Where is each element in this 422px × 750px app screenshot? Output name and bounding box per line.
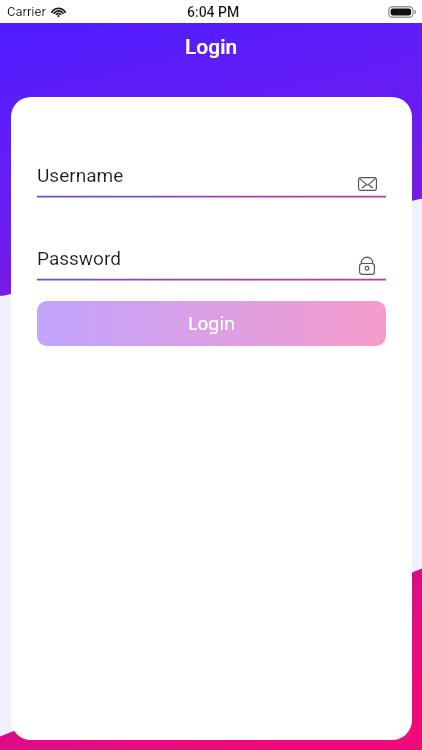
staticText: Username bbox=[37, 164, 124, 186]
staticText: 6:04 PM bbox=[187, 4, 240, 20]
button[interactable]: Email bbox=[356, 173, 378, 195]
button[interactable]: Login bbox=[37, 301, 386, 346]
staticText: Login bbox=[188, 311, 236, 336]
staticText: Login bbox=[185, 35, 238, 60]
button[interactable]: Password bbox=[356, 254, 378, 276]
staticText: Password bbox=[37, 247, 121, 269]
staticText: Carrier bbox=[7, 4, 46, 19]
